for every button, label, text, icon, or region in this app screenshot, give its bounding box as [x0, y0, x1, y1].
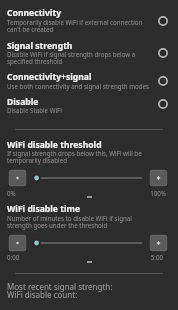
staticText: 5:00: [150, 253, 163, 261]
staticText: WiFi disable time: [7, 203, 81, 215]
staticText: Signal strength: [7, 40, 73, 52]
staticText: Use both connectivity and signal strengt…: [7, 82, 149, 90]
staticText: Most recent signal strength: WiFi disabl…: [7, 281, 113, 300]
staticText: Number of minutes to disable WiFi if sig…: [7, 214, 152, 230]
staticText: Disable WiFi if signal strength drops be…: [7, 50, 152, 66]
button[interactable]: Decrease threshold: [8, 169, 27, 187]
staticText: Disable: [7, 96, 39, 108]
staticText: Connectivity: [7, 7, 62, 19]
staticText: 0%: [7, 189, 16, 197]
staticText: 100%: [150, 189, 166, 197]
button[interactable]: Select option: [154, 12, 172, 30]
button[interactable]: Increase time: [149, 234, 168, 252]
staticText: 0:00: [7, 253, 20, 261]
button[interactable]: Slider: [29, 235, 144, 251]
staticText: Temporarily disable WiFi if external con…: [7, 18, 152, 34]
staticText: If signal strength drops below this, WiF…: [7, 149, 152, 165]
staticText: Connectivity+signal: [7, 71, 92, 83]
button[interactable]: Slider: [29, 170, 144, 186]
button[interactable]: Increase threshold: [149, 169, 168, 187]
staticText: Disable Stable WiFi: [7, 106, 62, 114]
button[interactable]: Decrease time: [8, 234, 27, 252]
button[interactable]: Select option: [154, 72, 172, 90]
button[interactable]: Select option: [154, 44, 172, 62]
button[interactable]: Select option: [154, 95, 172, 113]
staticText: WiFi disable threshold: [7, 139, 102, 151]
